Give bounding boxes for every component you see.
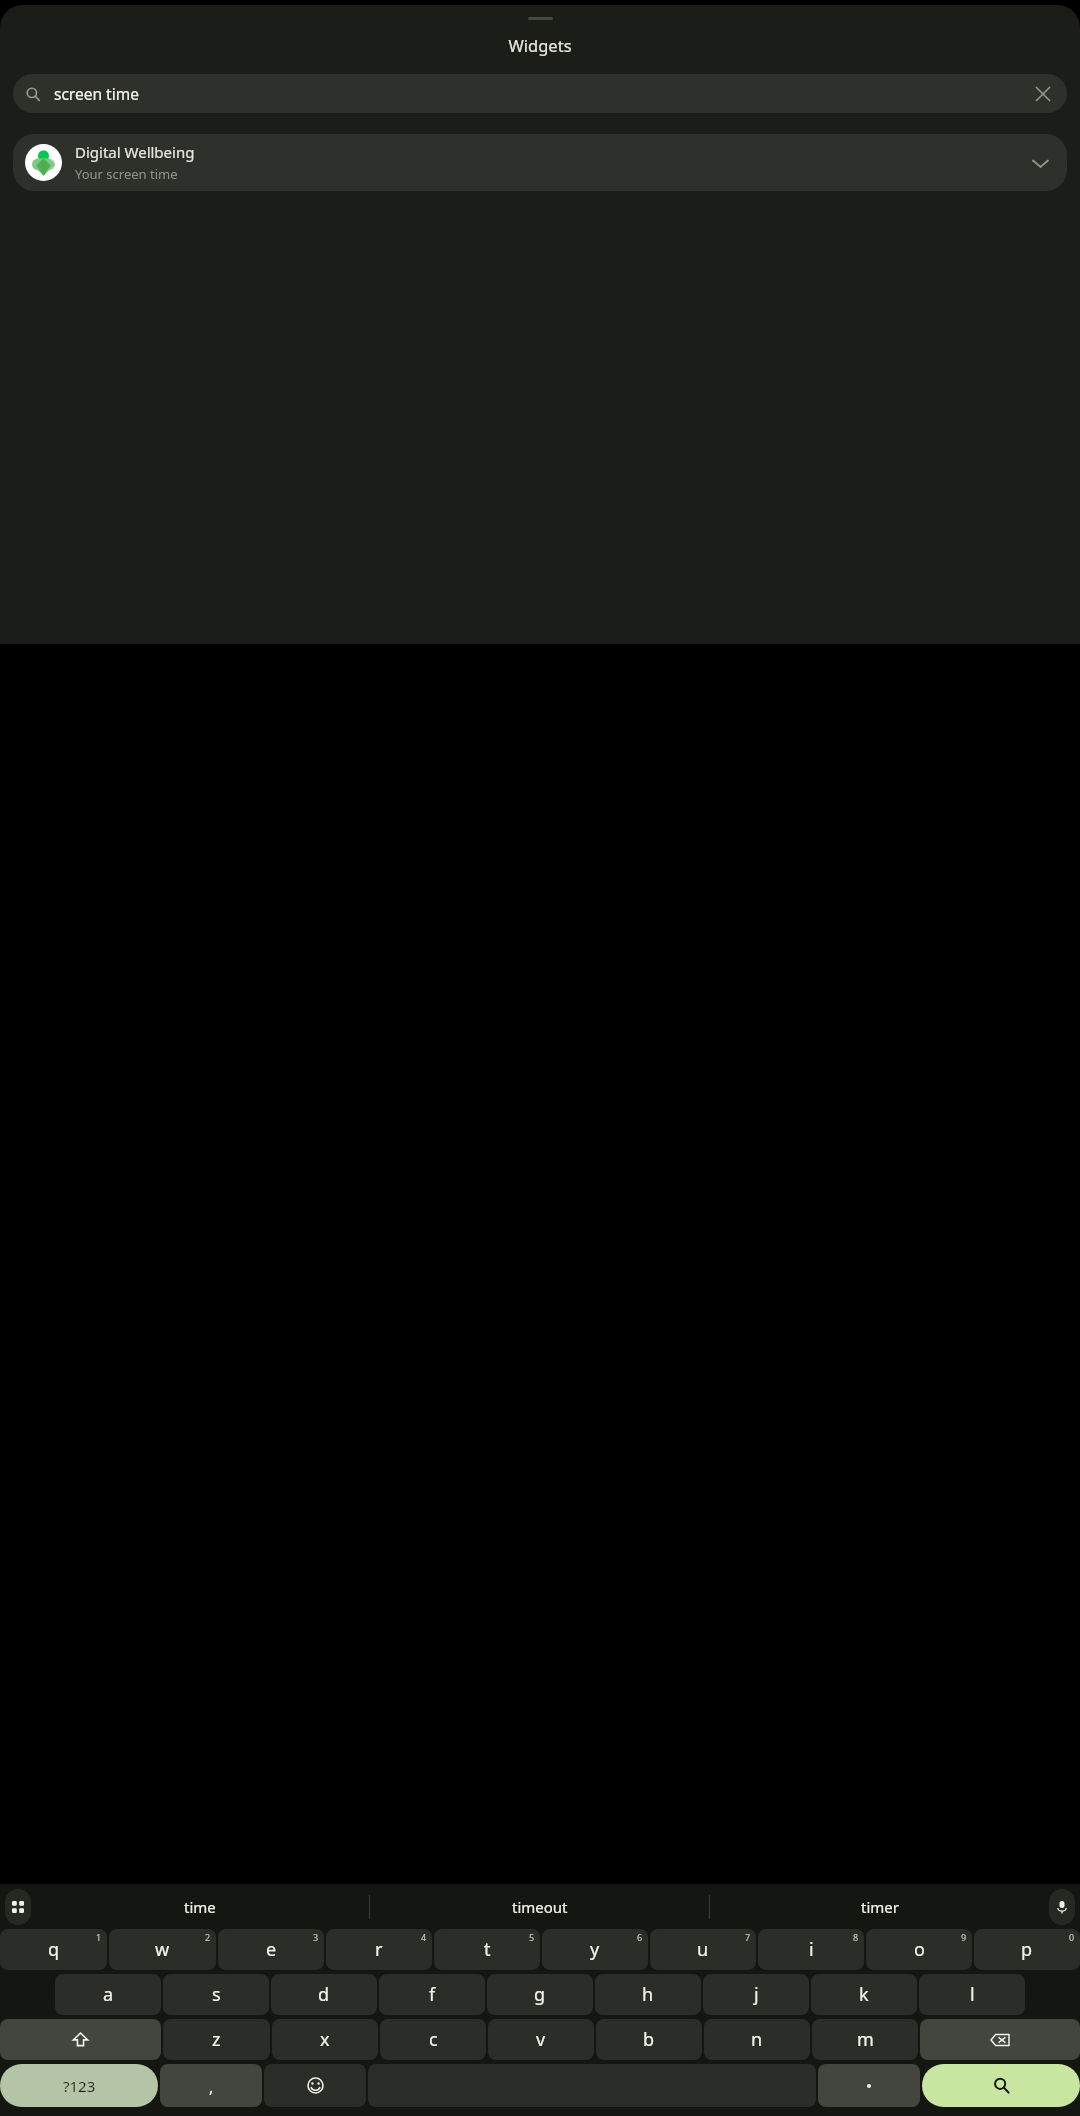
button[interactable]: , <box>160 2064 262 2107</box>
button[interactable]: m <box>812 2019 918 2060</box>
button[interactable]: o <box>866 1929 972 1970</box>
button[interactable]: Shift <box>0 2019 161 2060</box>
staticText: screen time <box>54 83 139 104</box>
staticText: f <box>429 1982 436 2007</box>
staticText: p <box>1021 1937 1033 1962</box>
staticText: n <box>751 2027 763 2052</box>
staticText: j <box>754 1982 759 2007</box>
staticText: timer <box>861 1897 899 1917</box>
staticText: 9 <box>961 1931 967 1943</box>
staticText: e <box>266 1937 277 1962</box>
button[interactable]: time <box>31 1884 369 1929</box>
staticText: t <box>484 1937 491 1962</box>
staticText: 5 <box>529 1931 535 1943</box>
staticText: o <box>914 1937 925 1962</box>
staticText: ?123 <box>63 2076 96 2096</box>
button[interactable]: Digital Wellbeing <box>13 134 1067 191</box>
staticText: u <box>697 1937 709 1962</box>
staticText: a <box>103 1982 114 2007</box>
button[interactable]: Toolbar <box>5 1889 31 1925</box>
staticText: 7 <box>745 1931 751 1943</box>
staticText: w <box>155 1937 170 1962</box>
button[interactable]: f <box>379 1974 485 2015</box>
staticText: i <box>809 1937 814 1962</box>
button[interactable]: timeout <box>370 1884 709 1929</box>
button[interactable]: r <box>326 1929 432 1970</box>
staticText: v <box>536 2027 546 2052</box>
staticText: c <box>429 2027 438 2052</box>
button[interactable]: Clear search <box>1023 74 1063 113</box>
button[interactable]: s <box>163 1974 269 2015</box>
staticText: Widgets <box>508 34 572 56</box>
staticText: Your screen time <box>75 165 178 183</box>
staticText: b <box>643 2027 655 2052</box>
button[interactable]: j <box>703 1974 809 2015</box>
button[interactable]: b <box>596 2019 702 2060</box>
button[interactable]: a <box>55 1974 161 2015</box>
button[interactable]: c <box>380 2019 486 2060</box>
button[interactable]: u <box>650 1929 756 1970</box>
button[interactable]: v <box>488 2019 594 2060</box>
button[interactable]: q <box>0 1929 107 1970</box>
staticText: d <box>318 1982 330 2007</box>
staticText: 8 <box>853 1931 859 1943</box>
button[interactable]: Search <box>922 2064 1080 2107</box>
button[interactable]: Expand <box>1019 142 1061 184</box>
button[interactable]: t <box>434 1929 540 1970</box>
staticText: l <box>970 1982 975 2007</box>
staticText: r <box>375 1937 383 1962</box>
button[interactable]: d <box>271 1974 377 2015</box>
staticText: s <box>212 1982 221 2007</box>
button[interactable]: h <box>595 1974 701 2015</box>
staticText: h <box>642 1982 654 2007</box>
staticText: q <box>48 1937 60 1962</box>
staticText: 4 <box>421 1931 427 1943</box>
staticText: 6 <box>637 1931 643 1943</box>
staticText: 0 <box>1069 1931 1075 1943</box>
staticText: timeout <box>512 1897 568 1917</box>
button[interactable]: screen time <box>13 74 1067 113</box>
staticText: k <box>859 1982 869 2007</box>
staticText: , <box>209 2076 214 2098</box>
button[interactable]: Emoji <box>264 2064 366 2107</box>
button[interactable]: p <box>974 1929 1080 1970</box>
staticText: z <box>212 2027 221 2052</box>
staticText: Digital Wellbeing <box>75 142 195 162</box>
button[interactable]: w <box>109 1929 216 1970</box>
staticText: g <box>534 1982 546 2007</box>
button[interactable]: l <box>919 1974 1025 2015</box>
button[interactable]: k <box>811 1974 917 2015</box>
staticText: 2 <box>205 1931 211 1943</box>
button[interactable]: y <box>542 1929 648 1970</box>
button[interactable]: ?123 <box>0 2064 158 2107</box>
button[interactable] <box>818 2064 920 2107</box>
staticText: 3 <box>313 1931 319 1943</box>
button[interactable]: i <box>758 1929 864 1970</box>
staticText: x <box>320 2027 330 2052</box>
button[interactable]: n <box>704 2019 810 2060</box>
button[interactable]: Backspace <box>920 2019 1080 2060</box>
button[interactable]: e <box>218 1929 324 1970</box>
button[interactable]: g <box>487 1974 593 2015</box>
button[interactable]: z <box>163 2019 270 2060</box>
staticText: 1 <box>96 1931 102 1943</box>
button[interactable]: Voice input <box>1049 1889 1075 1925</box>
staticText: m <box>857 2027 874 2052</box>
button[interactable]: timer <box>710 1884 1049 1929</box>
button[interactable]: x <box>272 2019 378 2060</box>
staticText: y <box>590 1937 600 1962</box>
staticText: time <box>184 1897 216 1917</box>
